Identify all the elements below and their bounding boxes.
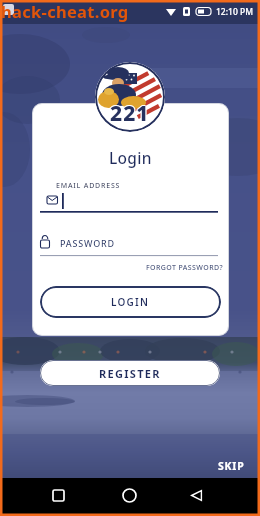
button[interactable]: REGISTER [40,360,220,386]
staticText: EMAIL ADDRESS [56,181,121,191]
staticText: 221 [110,98,150,127]
staticText: 221 [110,100,150,129]
staticText: 221 [110,99,150,128]
button[interactable]: LOGIN [40,286,221,318]
button[interactable]: SKIP [218,459,245,473]
button[interactable] [46,483,71,508]
staticText: 221 [109,99,149,128]
button[interactable]: FORGOT PASSWORD? [146,263,224,273]
staticText: REGISTER [99,366,161,381]
staticText: 221 [111,99,151,128]
staticText: Login [109,147,152,168]
staticText: 12:10 PM [216,6,253,18]
button[interactable] [117,483,142,508]
staticText: hack-cheat.org [1,0,129,22]
button[interactable] [184,483,209,508]
staticText: LOGIN [111,295,150,309]
staticText: PASSWORD [60,237,115,249]
